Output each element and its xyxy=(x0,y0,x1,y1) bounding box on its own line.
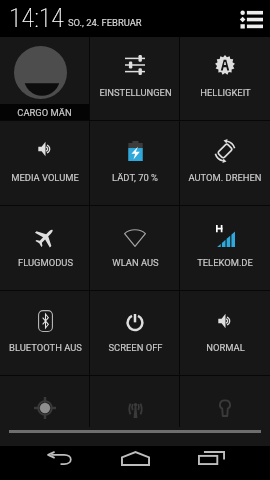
button[interactable]: EINSTELLUNGEN xyxy=(90,37,180,121)
button[interactable]: Quick settings xyxy=(236,4,266,34)
button[interactable]: Back xyxy=(38,441,82,475)
button[interactable]: MEDIA VOLUME xyxy=(0,121,90,206)
button[interactable]: SCREEN OFF xyxy=(90,291,180,376)
staticText: SO., 24. FEBRUAR xyxy=(68,17,142,28)
button[interactable]: HELLIGKEIT xyxy=(180,37,270,121)
button[interactable]: LÄDT, 70 % xyxy=(90,121,180,206)
staticText: SCREEN OFF xyxy=(108,342,163,353)
button[interactable]: Location xyxy=(0,376,90,427)
button[interactable]: Hotspot xyxy=(90,376,180,427)
button[interactable]: TELEKOM.DE xyxy=(180,206,270,291)
staticText: CARGO MÄN xyxy=(17,107,72,118)
button[interactable]: BLUETOOTH AUS xyxy=(0,291,90,376)
button[interactable]: FLUGMODUS xyxy=(0,206,90,291)
staticText: EINSTELLUNGEN xyxy=(99,87,172,98)
staticText: LÄDT, 70 % xyxy=(112,172,158,183)
button[interactable]: Flashlight xyxy=(180,376,270,427)
button[interactable]: Home xyxy=(113,441,157,475)
button[interactable]: WLAN AUS xyxy=(90,206,180,291)
button[interactable]: NORMAL xyxy=(180,291,270,376)
button[interactable]: Recents xyxy=(189,441,233,475)
staticText: MEDIA VOLUME xyxy=(11,172,79,183)
button[interactable]: CARGO MÄN xyxy=(0,37,90,121)
staticText: HELLIGKEIT xyxy=(200,87,251,98)
staticText: BLUETOOTH AUS xyxy=(9,342,82,353)
staticText: FLUGMODUS xyxy=(18,257,73,268)
staticText: TELEKOM.DE xyxy=(197,257,253,268)
staticText: AUTOM. DREHEN xyxy=(188,172,262,183)
button[interactable]: AUTOM. DREHEN xyxy=(180,121,270,206)
staticText: WLAN AUS xyxy=(112,257,159,268)
staticText: 14:14 xyxy=(9,3,64,33)
staticText: NORMAL xyxy=(206,342,245,353)
